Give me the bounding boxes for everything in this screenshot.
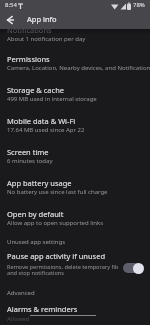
button[interactable]: [0, 49, 150, 80]
staticText: Allow app to open supported links: [7, 219, 104, 227]
staticText: Unused app settings: [7, 238, 66, 246]
staticText: Pause app activity if unused: [7, 251, 106, 261]
button[interactable]: [0, 142, 150, 173]
staticText: and stop notifications: [7, 269, 64, 277]
button[interactable]: [0, 173, 150, 204]
staticText: Remove permissions, delete temporary fil…: [7, 263, 118, 271]
button[interactable]: [0, 29, 150, 49]
button[interactable]: [0, 248, 150, 280]
staticText: Advanced: [7, 289, 35, 297]
staticText: Open by default: [7, 209, 64, 219]
staticText: About 1 notification per day: [7, 35, 86, 43]
button[interactable]: [2, 13, 18, 29]
button[interactable]: [123, 263, 143, 273]
staticText: Camera, Location, Nearby devices, and No…: [7, 64, 150, 72]
staticText: Screen time: [7, 147, 49, 157]
staticText: Mobile data & Wi-Fi: [7, 116, 76, 126]
staticText: App info: [27, 14, 57, 24]
staticText: 8:54: [5, 1, 17, 9]
button[interactable]: [0, 111, 150, 142]
staticText: 6 minutes today: [7, 157, 53, 165]
staticText: Notifications: [7, 25, 52, 35]
button[interactable]: [0, 204, 150, 235]
staticText: Allowed: [7, 315, 30, 323]
staticText: 78%: [133, 1, 145, 9]
staticText: 17.64 MB used since Apr 22: [7, 126, 85, 134]
button[interactable]: [0, 302, 150, 325]
staticText: Storage & cache: [7, 85, 65, 95]
staticText: 499 MB used in internal storage: [7, 95, 97, 103]
button[interactable]: [0, 80, 150, 111]
staticText: Permissions: [7, 54, 50, 64]
staticText: No battery use since last full charge: [7, 188, 108, 196]
staticText: App battery usage: [7, 178, 72, 188]
staticText: Alarms & reminders: [7, 304, 78, 314]
